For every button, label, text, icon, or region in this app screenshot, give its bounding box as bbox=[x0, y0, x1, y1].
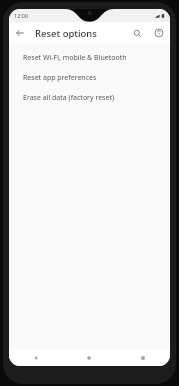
button[interactable]: Back bbox=[9, 22, 31, 44]
button[interactable]: Recent apps bbox=[116, 349, 170, 366]
staticText: Reset Wi-Fi, mobile & Bluetooth bbox=[23, 53, 127, 63]
button[interactable]: Reset Wi-Fi, mobile & Bluetooth bbox=[9, 48, 170, 68]
staticText: 12:00 bbox=[14, 12, 29, 19]
button[interactable]: Reset app preferences bbox=[9, 68, 170, 88]
button[interactable]: Help bbox=[148, 22, 170, 44]
staticText: Erase all data (factory reset) bbox=[23, 93, 115, 103]
button[interactable]: Home bbox=[62, 349, 116, 366]
button[interactable]: Search bbox=[126, 22, 148, 44]
button[interactable]: Back bbox=[9, 349, 62, 366]
staticText: Reset options bbox=[35, 27, 97, 40]
button[interactable]: Erase all data (factory reset) bbox=[9, 88, 170, 108]
staticText: Reset app preferences bbox=[23, 73, 97, 83]
